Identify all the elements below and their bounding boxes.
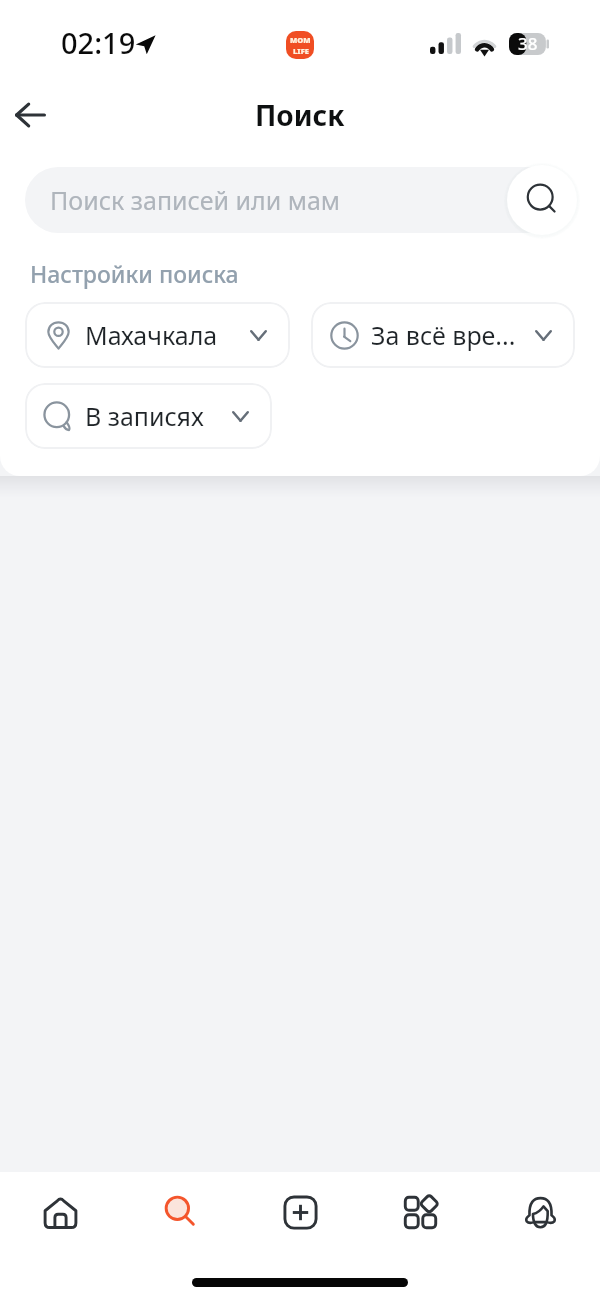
button[interactable]: Create post bbox=[264, 1176, 336, 1248]
staticText: LIFE bbox=[293, 46, 309, 56]
button[interactable]: Back bbox=[1, 86, 59, 144]
staticText: MOM bbox=[290, 35, 311, 45]
staticText: В записях bbox=[85, 399, 204, 433]
button[interactable]: За всё вре... bbox=[311, 302, 575, 368]
staticText: Поиск записей или мам bbox=[50, 183, 340, 217]
button[interactable]: Search bbox=[507, 165, 577, 235]
staticText: 02:19 bbox=[61, 23, 136, 62]
staticText: Поиск bbox=[255, 96, 345, 134]
staticText: Махачкала bbox=[85, 318, 218, 352]
button[interactable]: Profile bbox=[504, 1176, 576, 1248]
button[interactable]: Поиск записей или мам bbox=[25, 167, 575, 233]
button[interactable]: Search bbox=[144, 1176, 216, 1248]
button[interactable]: Home bbox=[24, 1176, 96, 1248]
button[interactable]: В записях bbox=[25, 383, 272, 449]
button[interactable]: Services bbox=[384, 1176, 456, 1248]
staticText: За всё вре... bbox=[371, 318, 516, 352]
staticText: Настройки поиска bbox=[30, 258, 239, 289]
staticText: 38 bbox=[518, 32, 538, 54]
button[interactable]: Махачкала bbox=[25, 302, 290, 368]
